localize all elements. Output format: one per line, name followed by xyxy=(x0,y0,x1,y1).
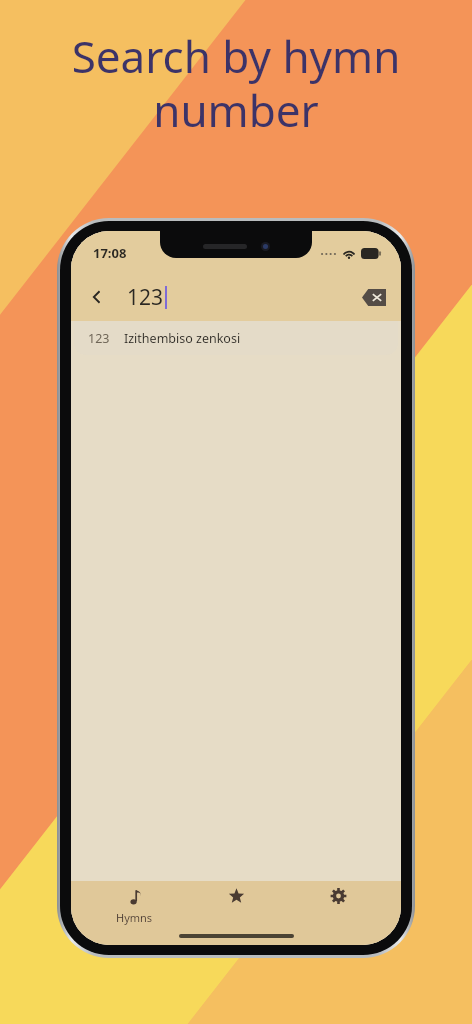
staticText: Search by hymn number xyxy=(0,26,472,140)
staticText: Izithembiso zenkosi xyxy=(124,330,241,347)
staticText: Hymns xyxy=(116,910,153,925)
button[interactable]: Favourites xyxy=(197,887,275,921)
staticText: 17:08 xyxy=(93,244,127,262)
button[interactable]: Back xyxy=(71,273,401,321)
button[interactable]: 123 xyxy=(74,321,398,355)
button[interactable]: Back xyxy=(79,279,115,315)
button[interactable]: Hymns xyxy=(95,887,173,927)
staticText: 123 xyxy=(127,283,164,312)
button[interactable]: Settings xyxy=(299,887,377,921)
staticText: 123 xyxy=(88,330,110,347)
button[interactable]: Clear xyxy=(359,284,389,310)
